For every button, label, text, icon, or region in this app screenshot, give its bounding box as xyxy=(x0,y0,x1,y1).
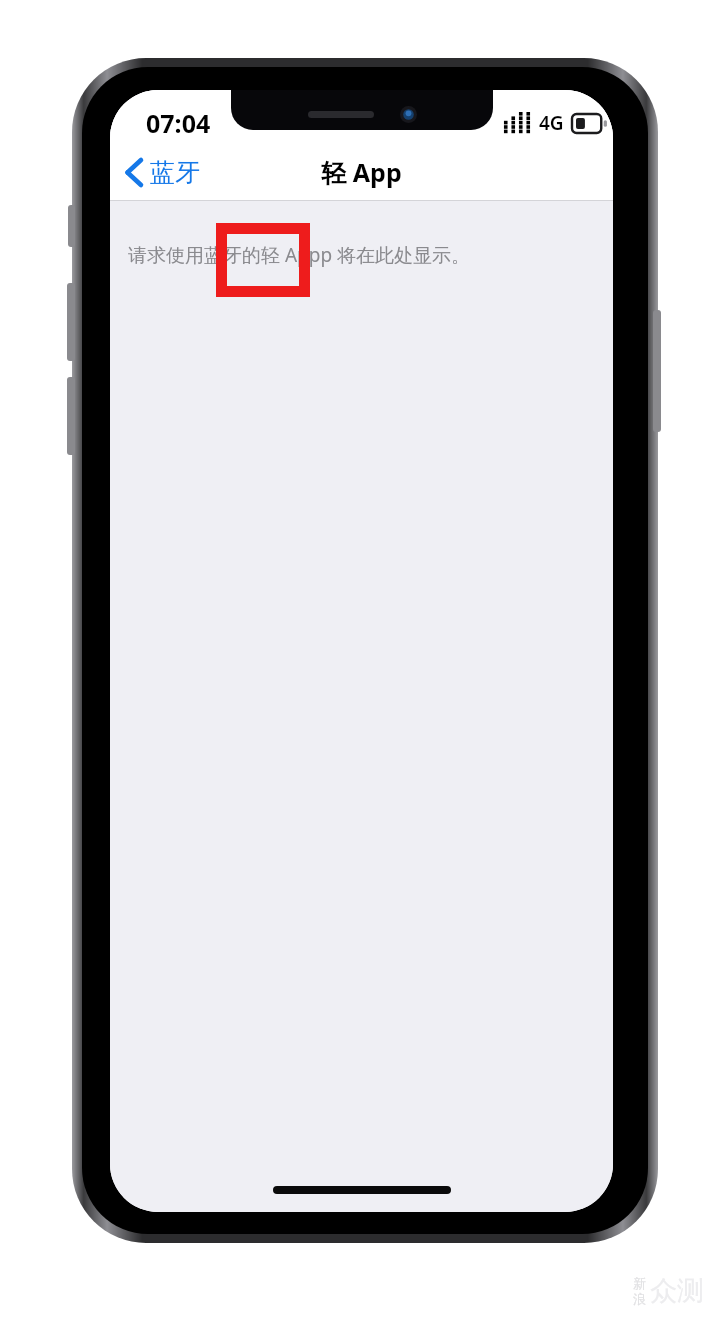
staticText: 众测 xyxy=(650,1274,704,1308)
staticText: 轻 App xyxy=(321,155,402,189)
staticText: 07:04 xyxy=(146,106,211,140)
staticText: 4G xyxy=(539,110,564,136)
button[interactable]: 蓝牙 xyxy=(118,148,210,196)
staticText: 浪 xyxy=(633,1291,646,1307)
staticText: 请求使用蓝牙的轻 Appp 将在此处显示。 xyxy=(128,242,471,268)
staticText: 新 xyxy=(633,1275,646,1291)
staticText: 蓝牙 xyxy=(150,157,200,188)
